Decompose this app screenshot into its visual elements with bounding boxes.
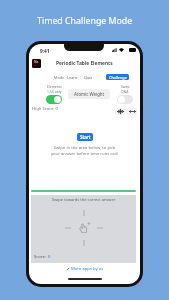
- staticText: More apps by us: [71, 266, 104, 272]
- staticText: Atomic Weight: [74, 91, 105, 97]
- staticText: 1-56 only: [47, 89, 62, 94]
- staticText: Swap: [121, 84, 130, 89]
- staticText: 11: [35, 64, 38, 67]
- staticText: Start: [80, 134, 91, 140]
- staticText: Swipe towards the correct answer: [52, 197, 116, 202]
- staticText: Swipe in the area below, to pick your an…: [29, 145, 140, 156]
- button[interactable]: Four direction swipe: [115, 108, 125, 115]
- staticText: Elements: [47, 84, 62, 89]
- button[interactable]: Learn: [65, 74, 80, 80]
- button[interactable]: Atomic Weight: [68, 89, 110, 99]
- button[interactable]: Quiz: [82, 74, 95, 80]
- button[interactable]: Start: [77, 133, 93, 141]
- staticText: Mode: [54, 75, 65, 80]
- button[interactable]: Toggle off: [117, 95, 133, 104]
- button[interactable]: Two direction swipe: [127, 108, 137, 115]
- staticText: 0: [48, 254, 51, 260]
- staticText: Score:: [34, 254, 48, 260]
- staticText: High Score: 0: [32, 106, 58, 112]
- staticText: Learn: [67, 75, 78, 80]
- staticText: Na: [34, 60, 39, 64]
- staticText: 9:41: [40, 48, 50, 55]
- button[interactable]: App icon: [32, 59, 41, 68]
- staticText: Timed Challenge Mode: [37, 15, 133, 27]
- staticText: Quiz: [84, 75, 93, 80]
- button[interactable]: More apps by us: [66, 266, 104, 272]
- staticText: Periodic Table Elements: [56, 60, 113, 67]
- staticText: Challenge: [109, 75, 127, 80]
- button[interactable]: Toggle on: [46, 95, 62, 104]
- staticText: Q&A: [121, 89, 129, 94]
- button[interactable]: Challenge: [106, 74, 129, 80]
